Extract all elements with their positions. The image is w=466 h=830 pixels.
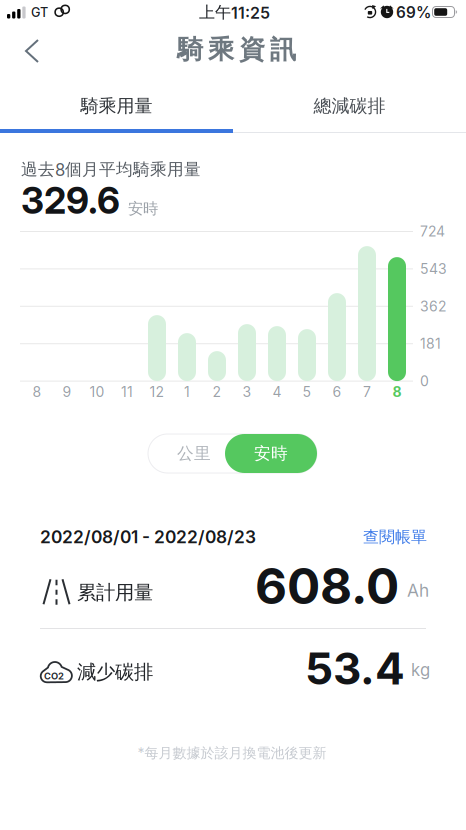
staticText: 9 [62,383,71,400]
staticText: 608.0 [255,556,399,616]
staticText: 1 [184,383,190,400]
staticText: 安時 [128,199,158,218]
staticText: 總減碳排 [313,95,385,117]
button[interactable]: Back [13,27,51,75]
button[interactable]: 查閱帳單 [363,527,427,547]
staticText: 5 [302,383,311,400]
staticText: GT [31,5,48,20]
staticText: 362 [420,298,447,315]
staticText: 公里 [177,443,211,464]
staticText: 0 [420,373,429,389]
staticText: 8 [392,383,401,400]
staticText: 騎 乘 資 訊 [177,33,296,66]
staticText: 543 [420,260,447,277]
staticText: 3 [242,383,251,400]
button[interactable]: 騎乘用量 [0,84,233,128]
button[interactable]: 總減碳排 [233,84,466,128]
staticText: 2022/08/01 - 2022/08/23 [40,526,256,547]
staticText: 查閱帳單 [363,527,427,547]
staticText: 11 [121,383,133,400]
staticText: Ah [407,580,429,601]
staticText: 2 [212,383,221,400]
staticText: 安時 [254,443,288,464]
staticText: 減少碳排 [77,660,153,684]
staticText: 7 [363,383,371,400]
staticText: 6 [332,383,341,400]
staticText: kg [411,660,430,680]
staticText: 181 [420,335,441,352]
staticText: 上午11:25 [199,2,270,23]
button[interactable]: 公里 [155,434,232,473]
staticText: 4 [272,383,281,400]
staticText: 8 [32,383,41,400]
staticText: 329.6 [21,178,120,223]
staticText: 724 [420,223,445,240]
staticText: 騎乘用量 [80,95,152,117]
staticText: 過去8個月平均騎乘用量 [21,159,201,180]
staticText: *每月數據於該月換電池後更新 [137,744,326,762]
staticText: 12 [149,383,164,400]
staticText: 53.4 [305,642,405,695]
staticText: 10 [89,383,104,400]
staticText: 69% [396,3,431,22]
staticText: CO2 [44,671,64,682]
button[interactable]: 安時 [225,434,317,473]
staticText: 累計用量 [77,580,153,605]
